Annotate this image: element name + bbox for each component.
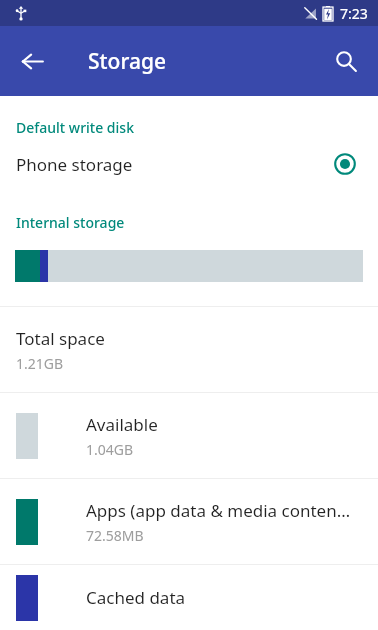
- staticText: 1.21GB: [16, 354, 64, 373]
- staticText: Phone storage: [16, 153, 334, 176]
- staticText: Cached data: [86, 586, 186, 609]
- staticText: Apps (app data & media conten…: [86, 499, 351, 522]
- staticText: 7:23: [340, 4, 368, 23]
- button[interactable]: Available: [0, 393, 378, 478]
- staticText: Total space: [16, 327, 105, 350]
- staticText: Internal storage: [16, 213, 125, 232]
- button[interactable]: Cached data: [0, 565, 378, 630]
- staticText: 1.04GB: [86, 440, 134, 459]
- staticText: Storage: [88, 47, 166, 76]
- staticText: Available: [86, 413, 158, 436]
- button[interactable]: Phone storage: [0, 137, 378, 191]
- button[interactable]: Back: [8, 37, 56, 85]
- button[interactable]: Search: [322, 37, 370, 85]
- staticText: 72.58MB: [86, 526, 144, 545]
- button[interactable]: Total space: [0, 307, 378, 392]
- staticText: Default write disk: [16, 118, 134, 137]
- button[interactable]: Apps (app data & media conten…: [0, 479, 378, 564]
